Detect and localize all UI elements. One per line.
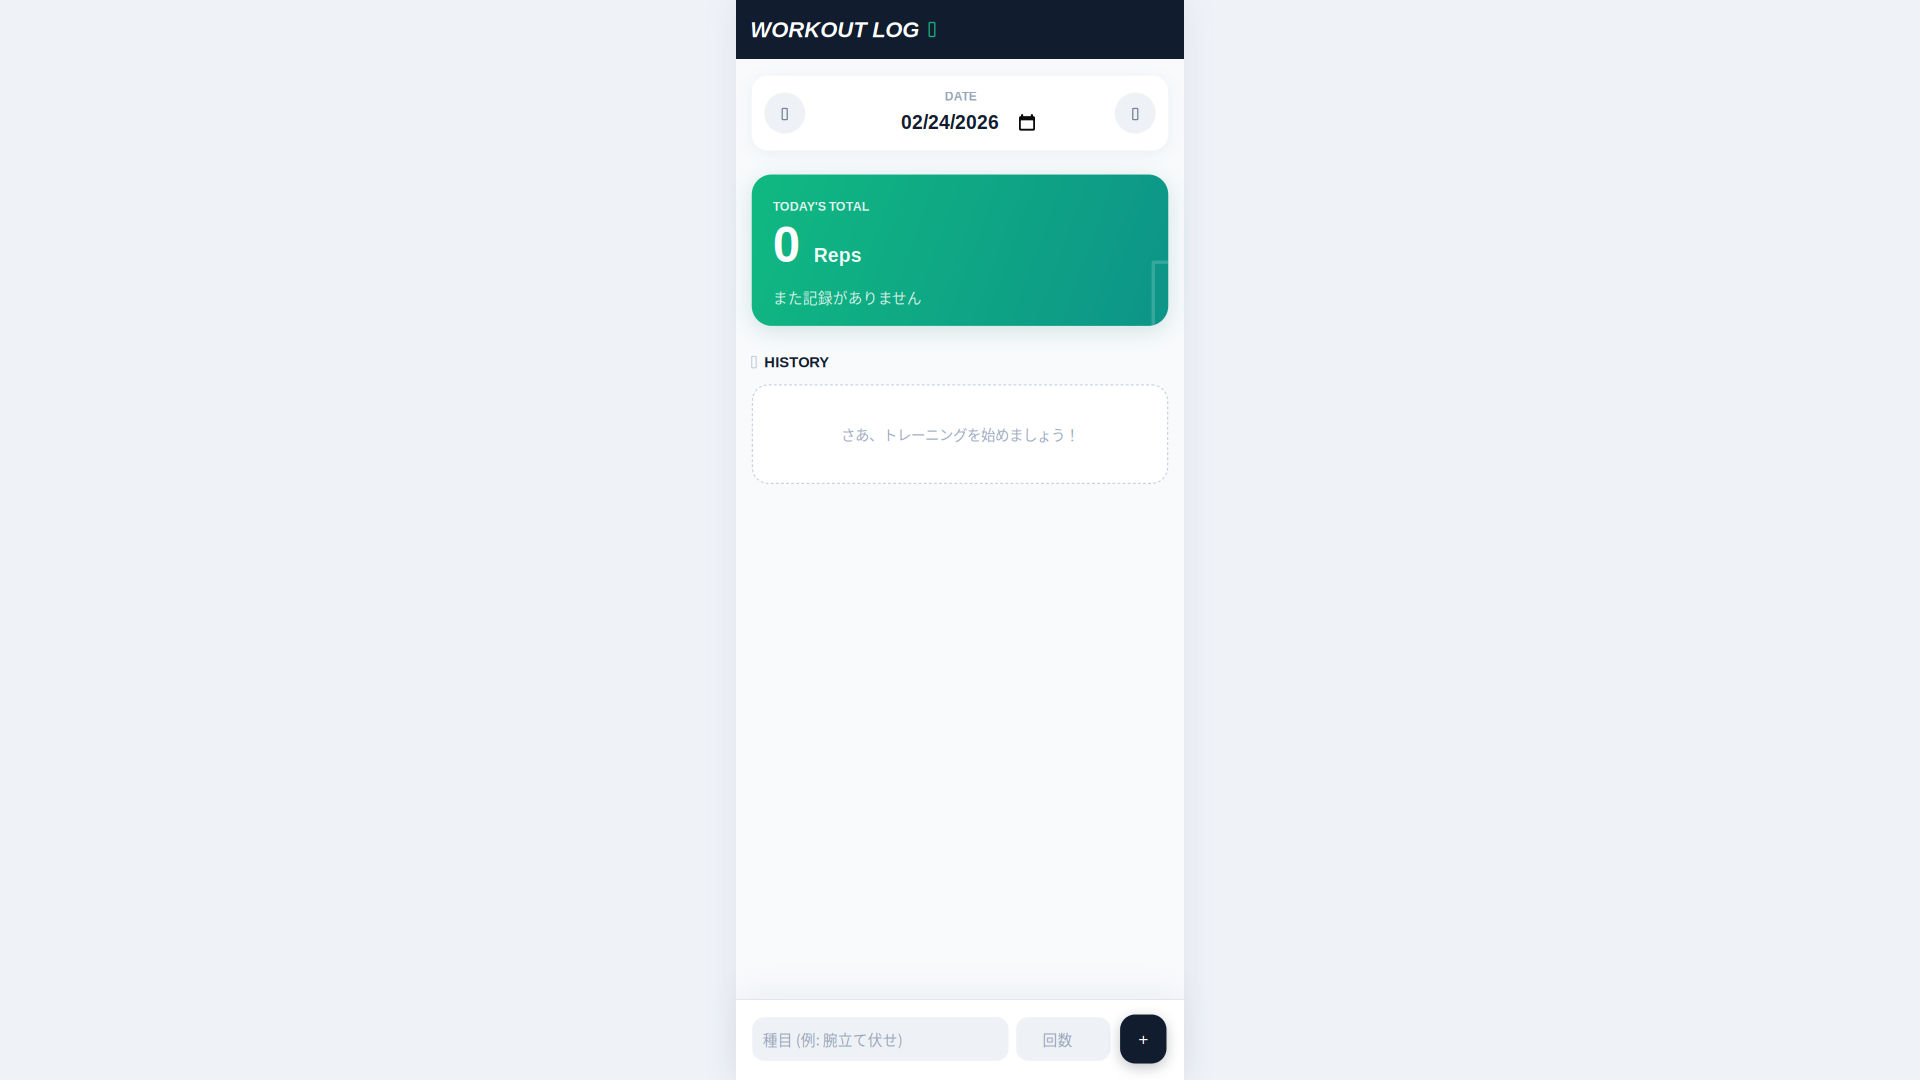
staticText: 02/24/2026 (901, 112, 999, 133)
button[interactable]: 回数 (1016, 1017, 1110, 1061)
staticText: + (1138, 1029, 1148, 1049)
button[interactable]: Add entry (1120, 1014, 1166, 1063)
staticText: 種目 (例: 腕立て伏せ) (763, 1028, 903, 1050)
button[interactable]: Choose date (900, 112, 1035, 133)
staticText: 0 (773, 217, 800, 272)
staticText: TODAY'S TOTAL (773, 199, 870, 213)
staticText: DATE (945, 90, 977, 103)
staticText: また記録がありません (773, 286, 922, 308)
button[interactable]: Next day (1115, 93, 1156, 134)
staticText: Reps (814, 244, 862, 266)
staticText: さあ、トレーニングを始めましょう！ (841, 424, 1079, 445)
staticText: 回数 (1043, 1028, 1073, 1050)
staticText: HISTORY (764, 354, 829, 370)
button[interactable]: 種目 (例: 腕立て伏せ) (752, 1017, 1009, 1061)
button[interactable]: Previous day (764, 93, 805, 134)
staticText: WORKOUT LOG (750, 17, 919, 42)
